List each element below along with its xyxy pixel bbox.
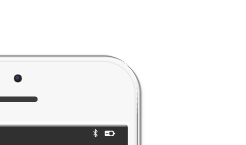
button[interactable]: Smartphone top corner photo xyxy=(0,0,246,145)
